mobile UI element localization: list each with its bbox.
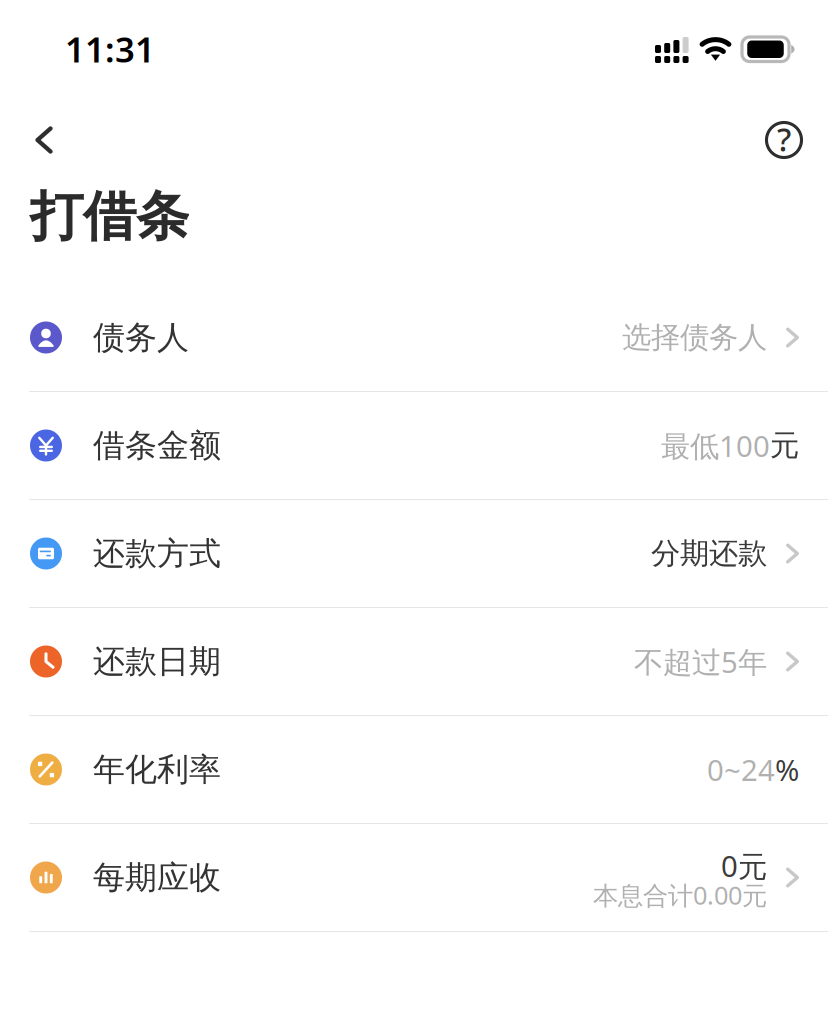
staticText: 最低100 (661, 426, 770, 465)
staticText: 11:31 (65, 26, 155, 72)
button[interactable]: 年化利率 (0, 716, 828, 824)
staticText: 0~24 (707, 750, 775, 789)
button[interactable]: 还款方式 (0, 500, 828, 608)
staticText: 打借条 (30, 184, 189, 249)
staticText: 借条金额 (93, 426, 221, 465)
staticText: 元 (770, 427, 799, 463)
staticText: 选择债务人 (622, 319, 767, 355)
button[interactable]: 债务人 (0, 284, 828, 392)
staticText: 本息合计0.00元 (593, 878, 767, 912)
staticText: 还款日期 (93, 642, 221, 681)
button[interactable]: 借条金额 (0, 392, 828, 500)
staticText: 0元 (721, 846, 767, 885)
staticText: 不超过5年 (634, 642, 767, 681)
staticText: % (775, 750, 799, 789)
staticText: ? (777, 118, 791, 160)
staticText: 年化利率 (93, 750, 221, 789)
staticText: 债务人 (93, 318, 189, 357)
button[interactable]: Back (14, 110, 90, 170)
staticText: 分期还款 (651, 535, 767, 571)
button[interactable]: 每期应收 (0, 824, 828, 932)
button[interactable]: Help (755, 111, 813, 169)
button[interactable]: 还款日期 (0, 608, 828, 716)
staticText: 每期应收 (93, 858, 221, 897)
staticText: 还款方式 (93, 534, 221, 573)
